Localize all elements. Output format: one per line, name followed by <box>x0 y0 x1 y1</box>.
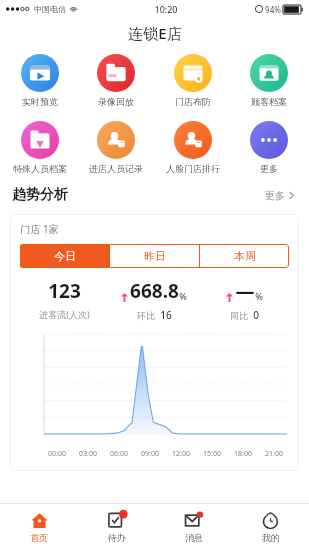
button[interactable]: 特殊人员档案 <box>4 119 76 176</box>
button[interactable]: 本周 <box>200 244 289 268</box>
staticText: % <box>255 290 263 302</box>
staticText: 03:00 <box>79 449 97 459</box>
staticText: 更多 <box>260 163 278 174</box>
button[interactable]: 昨日 <box>110 244 199 268</box>
button[interactable]: 今日 <box>20 244 109 268</box>
staticText: 顾客档案 <box>251 96 287 107</box>
staticText: 趋势分析 <box>12 186 68 204</box>
staticText: 实时预览 <box>22 96 58 107</box>
staticText: 门店布防 <box>175 96 211 107</box>
button[interactable]: 消息 <box>155 504 232 550</box>
staticText: % <box>179 290 187 302</box>
staticText: 录像回放 <box>98 96 134 107</box>
button[interactable]: 顾客档案 <box>233 52 305 109</box>
staticText: 进客流(人次) <box>39 308 90 320</box>
staticText: 12:00 <box>172 449 190 459</box>
staticText: 中国电信 <box>34 4 66 14</box>
staticText: 更多 <box>265 189 285 202</box>
staticText: 昨日 <box>144 249 166 263</box>
button[interactable]: 更多 <box>233 119 305 176</box>
button[interactable]: 首页 <box>0 504 78 550</box>
staticText: 连锁E店 <box>128 23 182 43</box>
staticText: 15:00 <box>203 449 221 459</box>
staticText: 09:00 <box>141 449 159 459</box>
button[interactable]: 门店布防 <box>157 52 229 109</box>
staticText: 人脸门店排行 <box>166 163 220 174</box>
staticText: — <box>235 278 255 304</box>
staticText: 10:20 <box>154 3 178 15</box>
button[interactable]: 实时预览 <box>4 52 76 109</box>
staticText: 0 <box>253 308 259 322</box>
staticText: 首页 <box>30 532 48 543</box>
staticText: 待办 <box>108 532 126 543</box>
staticText: 06:00 <box>110 449 128 459</box>
staticText: 同比 <box>230 310 248 321</box>
staticText: 门店 1家 <box>20 222 59 236</box>
staticText: 今日 <box>54 249 76 263</box>
staticText: 94% <box>265 4 281 15</box>
staticText: 16 <box>160 308 172 322</box>
staticText: 123 <box>48 278 81 304</box>
staticText: 00:00 <box>48 449 66 459</box>
button[interactable]: 待办 <box>78 504 155 550</box>
staticText: 668.8 <box>130 278 179 304</box>
button[interactable]: 人脸门店排行 <box>157 119 229 176</box>
button[interactable]: 录像回放 <box>80 52 152 109</box>
button[interactable]: 我的 <box>232 504 309 550</box>
staticText: 18:00 <box>234 449 252 459</box>
button[interactable]: 进店人员记录 <box>80 119 152 176</box>
staticText: 环比 <box>137 310 155 321</box>
button[interactable]: 更多 <box>263 187 297 204</box>
staticText: 我的 <box>262 532 280 543</box>
staticText: 特殊人员档案 <box>13 163 67 174</box>
staticText: 21:00 <box>265 449 283 459</box>
staticText: 消息 <box>185 532 203 543</box>
staticText: 本周 <box>234 249 256 263</box>
staticText: 进店人员记录 <box>89 163 143 174</box>
